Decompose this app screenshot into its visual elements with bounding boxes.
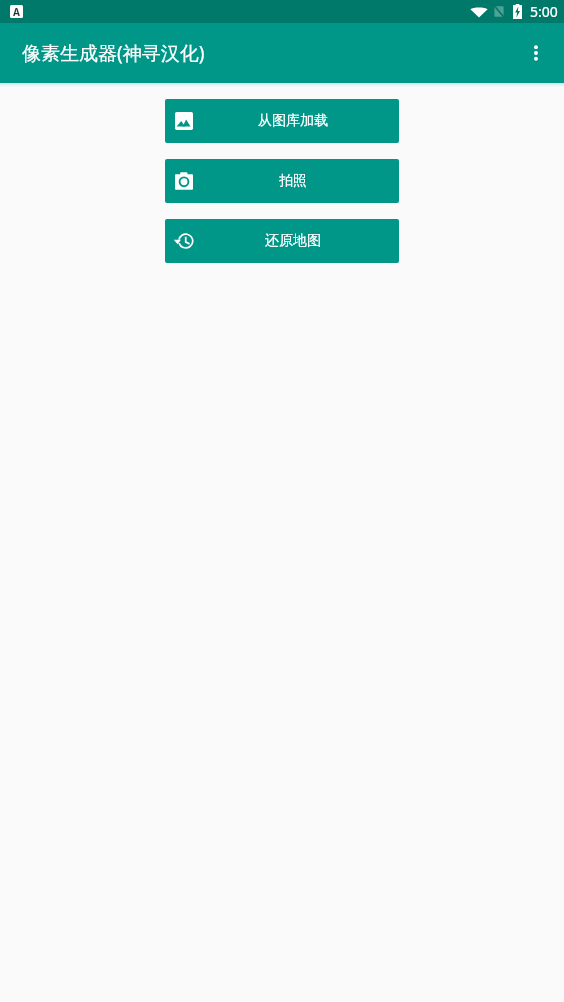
staticText: 从图库加载 [258, 112, 328, 130]
staticText: 还原地图 [265, 232, 321, 250]
staticText: 5:00 [530, 2, 558, 21]
button[interactable]: More options [514, 31, 558, 75]
button[interactable]: 拍照 [165, 159, 399, 203]
button[interactable]: 还原地图 [165, 219, 399, 263]
button[interactable]: 从图库加载 [165, 99, 399, 143]
staticText: 像素生成器(神寻汉化) [22, 40, 205, 66]
staticText: A [13, 5, 20, 18]
staticText: 拍照 [279, 172, 307, 190]
